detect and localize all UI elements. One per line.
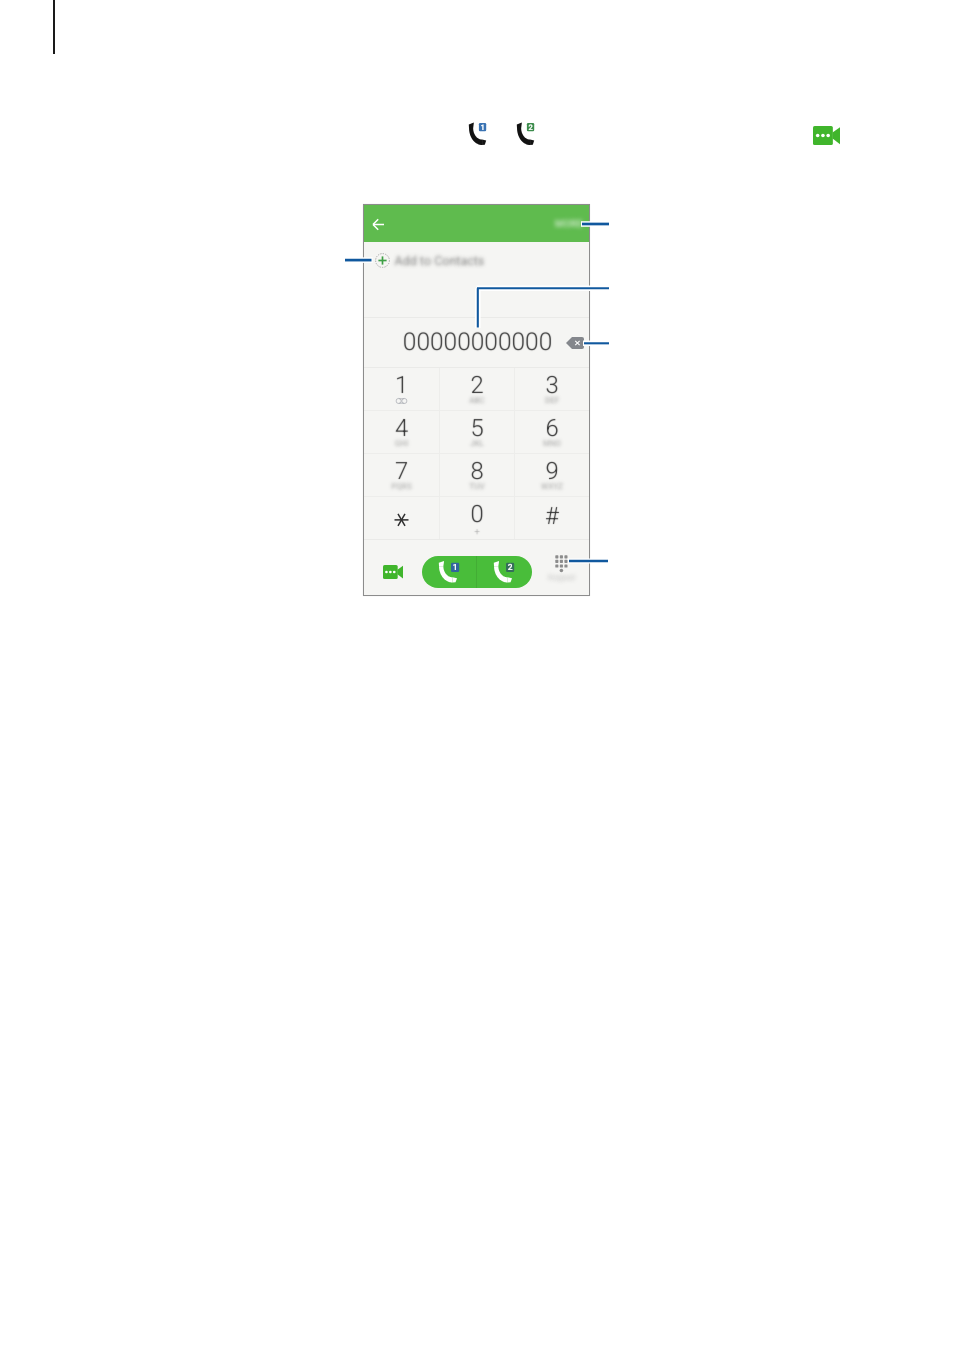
button[interactable]: 3 [515, 368, 589, 410]
button[interactable]: 1 [364, 368, 439, 410]
button[interactable]: * [364, 497, 439, 539]
button[interactable]: 7 [364, 454, 439, 496]
button[interactable]: 8 [440, 454, 514, 496]
button[interactable]: Call with SIM 1 [465, 119, 489, 147]
button[interactable]: Video call [383, 565, 403, 579]
button[interactable]: 2 [440, 368, 514, 410]
button[interactable]: Call with SIM 1 [422, 556, 476, 588]
button[interactable]: Backspace [566, 337, 584, 349]
button[interactable]: Video call [813, 126, 840, 145]
button[interactable]: 5 [440, 411, 514, 453]
button[interactable]: # [515, 497, 589, 539]
button[interactable]: 6 [515, 411, 589, 453]
button[interactable]: Call with SIM 2 [513, 119, 537, 147]
button[interactable]: Call with SIM 2 [477, 556, 532, 588]
button[interactable]: 4 [364, 411, 439, 453]
button[interactable]: 0 [440, 497, 514, 539]
button[interactable]: Keypad [545, 553, 577, 589]
button[interactable]: 9 [515, 454, 589, 496]
button[interactable]: Back [372, 218, 385, 231]
button[interactable]: More options [541, 205, 589, 242]
button[interactable]: Add to Contacts [364, 242, 589, 279]
